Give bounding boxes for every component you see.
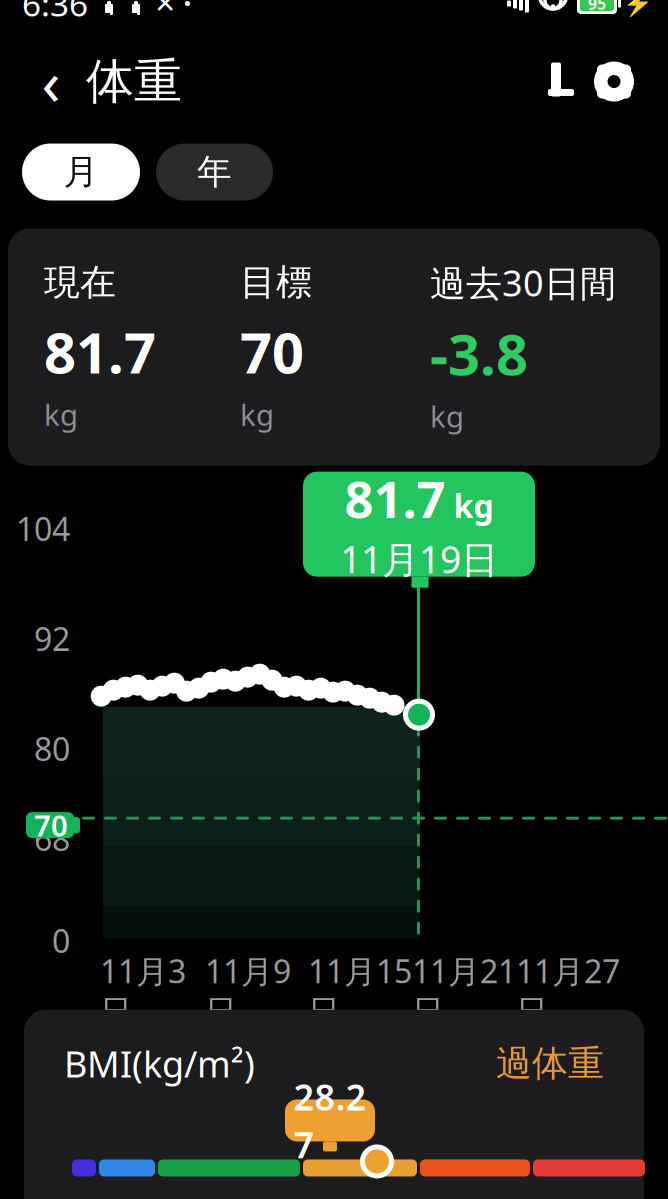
staticText: 11月21日 <box>412 950 516 1031</box>
staticText: ⚡ <box>623 0 653 17</box>
staticText: 11月9日 <box>205 950 291 1031</box>
staticText: 6:36 <box>22 0 88 26</box>
staticText: 81.7 <box>344 465 445 532</box>
button[interactable]: 戻る <box>26 49 76 113</box>
button[interactable]: 年 <box>156 143 273 200</box>
staticText: 95 <box>588 0 606 14</box>
staticText: 104 <box>16 507 70 550</box>
staticText: 年 <box>197 151 232 193</box>
staticText: 過去30日間 <box>430 258 616 306</box>
staticText: 92 <box>34 617 70 660</box>
staticText: 80 <box>34 727 70 770</box>
staticText: kg <box>453 484 493 527</box>
staticText: 11月15日 <box>308 950 412 1031</box>
staticText: 81.7 <box>44 314 156 389</box>
staticText: kg <box>430 397 464 436</box>
staticText: 28.27 <box>293 1073 366 1168</box>
staticText: 70 <box>34 806 68 845</box>
staticText: 11月27日 <box>516 950 620 1031</box>
button[interactable]: 設定 <box>586 51 642 111</box>
button[interactable]: 月 <box>22 143 140 200</box>
staticText: 11月3日 <box>100 950 186 1031</box>
staticText: 0 <box>52 919 70 962</box>
staticText: BMI(kg/m²) <box>64 1040 255 1087</box>
staticText: ✕ <box>154 0 176 19</box>
staticText: 11月19日 <box>340 534 498 584</box>
staticText: kg <box>240 395 274 434</box>
staticText: -3.8 <box>430 316 528 391</box>
button[interactable]: 編集 <box>530 51 586 111</box>
staticText: 体重 <box>86 52 182 111</box>
staticText: ‹ <box>41 41 60 122</box>
staticText: 68 <box>34 817 70 860</box>
staticText: kg <box>44 395 78 434</box>
staticText: 70 <box>240 314 304 389</box>
staticText: 目標 <box>240 260 312 304</box>
staticText: 月 <box>63 151 98 193</box>
staticText: 過体重 <box>496 1041 604 1086</box>
staticText: 現在 <box>44 260 116 304</box>
